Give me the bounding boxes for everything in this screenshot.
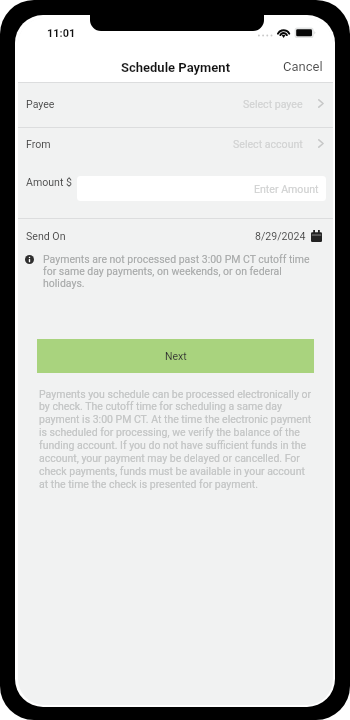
button[interactable]: Payee: [18, 82, 333, 126]
staticText: Schedule Payment: [18, 60, 333, 75]
staticText: Send On: [26, 230, 66, 242]
staticText: Payments you schedule can be processed e…: [39, 388, 315, 491]
button[interactable]: From: [18, 126, 333, 161]
other: Battery: [294, 27, 317, 39]
button[interactable]: Cancel: [274, 54, 331, 78]
staticText: 8/29/2024: [255, 230, 306, 242]
button[interactable]: Next: [37, 339, 314, 373]
staticText: Cancel: [283, 59, 323, 74]
other: Wi-Fi: [277, 27, 291, 38]
other: Choose date: [311, 230, 322, 242]
staticText: Enter Amount: [254, 183, 319, 195]
staticText: Select payee: [243, 98, 303, 110]
staticText: Select account: [233, 138, 303, 150]
staticText: Payments are not processed past 3:00 PM …: [43, 253, 315, 289]
button[interactable]: Send On: [18, 219, 333, 253]
button[interactable]: Enter Amount: [77, 176, 326, 201]
staticText: Payee: [26, 98, 55, 110]
staticText: Next: [165, 350, 187, 362]
staticText: From: [26, 138, 51, 150]
staticText: Amount $: [26, 176, 72, 188]
staticText: 11:01: [47, 27, 76, 40]
